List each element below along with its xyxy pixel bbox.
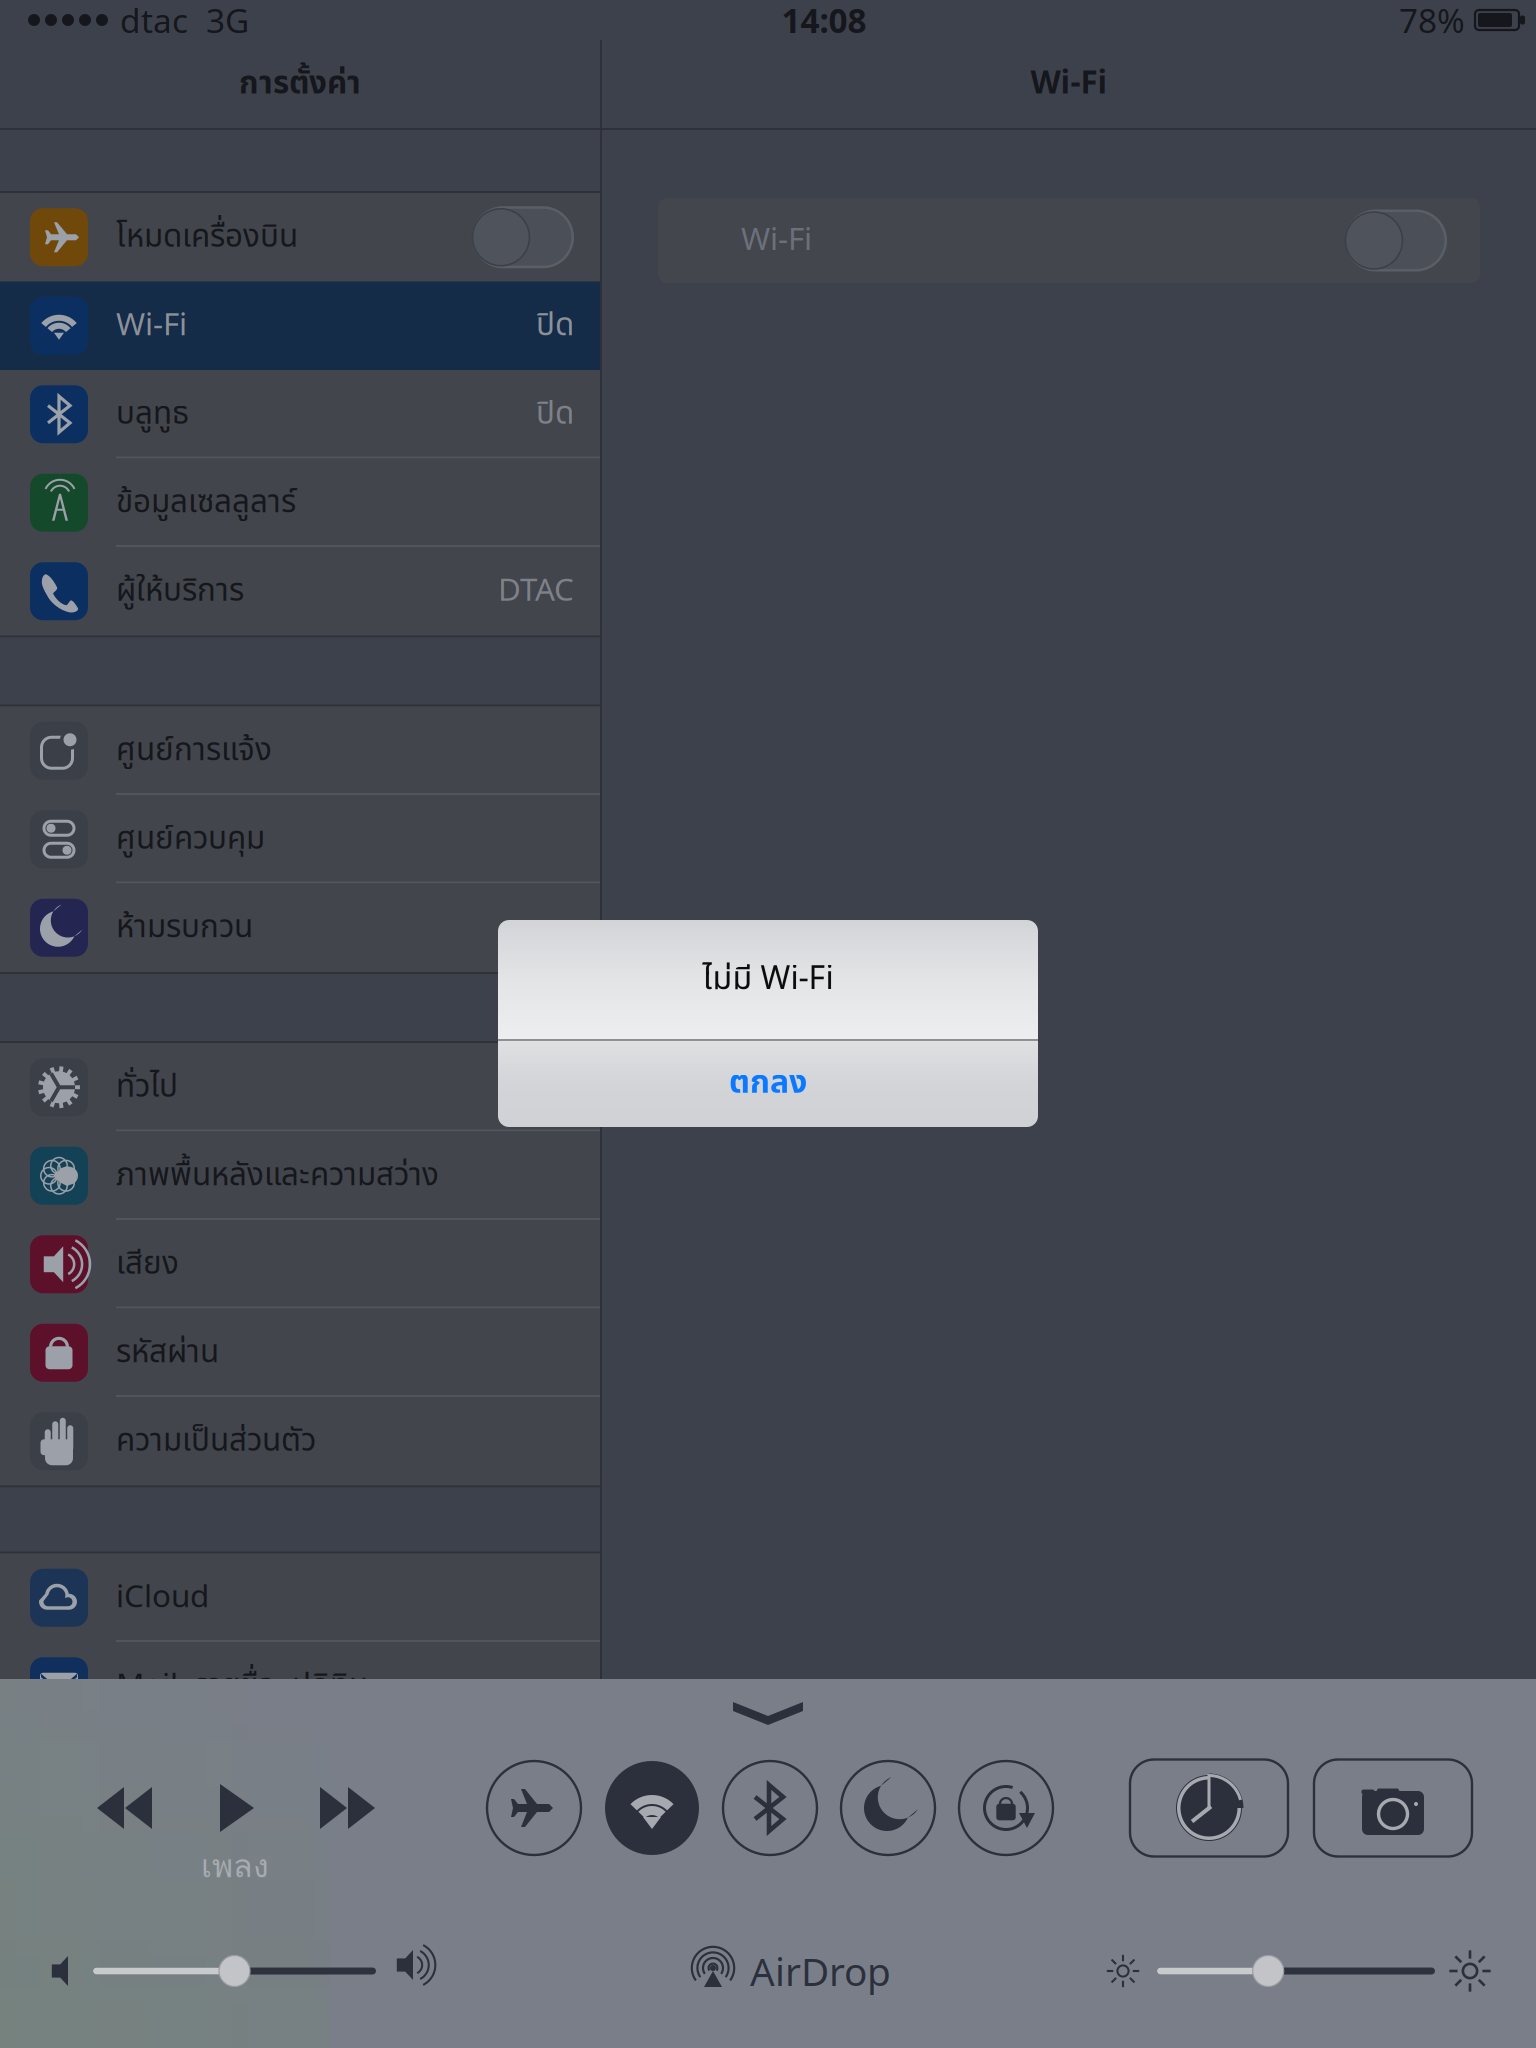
- button[interactable]: การตั้งค่า: [0, 40, 600, 128]
- button[interactable]: Rotation Lock: [947, 1760, 1065, 1856]
- button[interactable]: Airplane Mode: [475, 1760, 593, 1856]
- staticText: ภาพพื้นหลังและความสว่าง: [116, 1152, 439, 1199]
- button[interactable]: Bluetooth: [711, 1760, 829, 1856]
- button[interactable]: ความเป็นส่วนตัว: [0, 1397, 600, 1485]
- staticText: Wi-Fi: [116, 302, 187, 349]
- button[interactable]: โหมดเครื่องบิน: [0, 193, 600, 281]
- staticText: ปิด: [536, 391, 574, 438]
- button[interactable]: Timer: [1130, 1759, 1288, 1856]
- button[interactable]: Wi-Fi: [593, 1760, 711, 1856]
- staticText: บลูทูธ: [116, 391, 189, 438]
- button[interactable]: ข้อมูลเซลลูลาร์: [0, 458, 600, 547]
- staticText: ศูนย์การแจ้ง: [116, 727, 272, 774]
- button[interactable]: Mail, รายชื่อ, ปฏิทิน: [0, 1642, 600, 1730]
- button[interactable]: iCloud: [0, 1553, 600, 1642]
- button[interactable]: ห้ามรบกวน: [0, 883, 600, 972]
- button[interactable]: ทั่วไป: [0, 1043, 600, 1131]
- button[interactable]: Fast forward: [320, 1760, 375, 1856]
- button[interactable]: ศูนย์ควบคุม: [0, 795, 600, 883]
- staticText: 78%: [1399, 0, 1465, 43]
- button[interactable]: ผู้ให้บริการ: [0, 547, 600, 635]
- staticText: ข้อมูลเซลลูลาร์: [116, 479, 296, 526]
- staticText: ทั่วไป: [116, 1064, 178, 1111]
- staticText: AirDrop: [750, 1945, 891, 1997]
- button[interactable]: เสียง: [0, 1220, 600, 1308]
- button[interactable]: บลูทูธ: [0, 370, 600, 458]
- staticText: รหัสผ่าน: [116, 1329, 219, 1376]
- button[interactable]: ศูนย์การแจ้ง: [0, 706, 600, 795]
- staticText: iCloud: [116, 1574, 209, 1621]
- staticText: ห้ามรบกวน: [116, 904, 253, 951]
- button[interactable]: รหัสผ่าน: [0, 1308, 600, 1397]
- button[interactable]: Camera: [1314, 1759, 1472, 1856]
- button[interactable]: Play: [220, 1760, 254, 1856]
- button[interactable]: ตกลง: [498, 1039, 1038, 1127]
- staticText: ตกลง: [729, 1059, 807, 1107]
- button[interactable]: Rewind: [97, 1760, 152, 1856]
- staticText: ความเป็นส่วนตัว: [116, 1418, 316, 1465]
- staticText: Mail, รายชื่อ, ปฏิทิน: [116, 1663, 368, 1710]
- button[interactable]: Do Not Disturb: [829, 1760, 947, 1856]
- staticText: Wi-Fi: [1030, 60, 1107, 108]
- button[interactable]: Wi-Fi: [0, 281, 600, 370]
- button[interactable]: Wi-Fi: [658, 198, 1480, 283]
- staticText: การตั้งค่า: [239, 60, 361, 108]
- button[interactable]: ภาพพื้นหลังและความสว่าง: [0, 1131, 600, 1220]
- staticText: Wi-Fi: [741, 217, 812, 264]
- staticText: 3G: [206, 0, 249, 43]
- staticText: dtac: [120, 0, 188, 43]
- staticText: ผู้ให้บริการ: [116, 568, 244, 615]
- staticText: DTAC: [498, 568, 574, 615]
- staticText: ศูนย์ควบคุม: [116, 816, 265, 863]
- staticText: ปิด: [536, 302, 574, 349]
- staticText: ไม่มี Wi-Fi: [702, 955, 833, 1004]
- staticText: 14:08: [781, 0, 866, 43]
- staticText: โหมดเครื่องบิน: [116, 214, 298, 261]
- staticText: เพลง: [201, 1841, 269, 1891]
- staticText: เสียง: [116, 1241, 179, 1288]
